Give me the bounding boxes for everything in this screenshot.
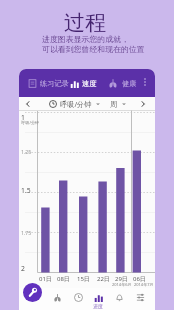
staticText: 08日	[57, 275, 70, 283]
button[interactable]: 练习记录	[28, 69, 69, 97]
button[interactable]: Next period	[137, 97, 149, 111]
staticText: 过程	[64, 10, 106, 36]
staticText: 29日	[115, 275, 128, 283]
button[interactable]: Tools	[23, 283, 42, 302]
staticText: 1.75	[21, 229, 32, 236]
button[interactable]: History	[68, 288, 88, 310]
staticText: 2	[21, 264, 25, 273]
staticText: 呼吸/分钟	[21, 120, 40, 126]
staticText: 周	[110, 100, 118, 109]
staticText: 06日	[133, 275, 146, 283]
staticText: 1.5	[21, 186, 31, 195]
staticText: 2014年6月	[112, 282, 132, 287]
staticText: 进度图表显示您的成就，	[42, 34, 129, 44]
button[interactable]: Breathe	[47, 288, 67, 310]
staticText: 呼吸/分钟	[60, 99, 92, 109]
button[interactable]: 速度	[70, 69, 97, 97]
staticText: 进度	[93, 303, 103, 309]
button[interactable]: 健康	[108, 69, 137, 97]
button[interactable]: Reminders	[109, 288, 129, 310]
button[interactable]: Previous period	[22, 97, 34, 111]
button[interactable]: Settings	[130, 288, 150, 310]
button[interactable]: 周	[110, 97, 127, 111]
staticText: 22日	[97, 275, 110, 283]
staticText: 速度	[82, 79, 97, 88]
staticText: 1	[21, 113, 25, 122]
staticText: 健康	[122, 79, 137, 88]
staticText: 01日	[39, 275, 52, 283]
staticText: 可以看到您曾经和现在的位置	[42, 44, 145, 54]
button[interactable]: 呼吸/分钟	[49, 97, 101, 111]
button[interactable]: More options	[140, 77, 150, 87]
staticText: 15日	[77, 275, 90, 283]
staticText: 练习记录	[40, 79, 69, 88]
staticText: 1.25	[21, 148, 32, 155]
staticText: 2014年7月	[134, 282, 154, 287]
button[interactable]: Progress	[88, 288, 108, 310]
